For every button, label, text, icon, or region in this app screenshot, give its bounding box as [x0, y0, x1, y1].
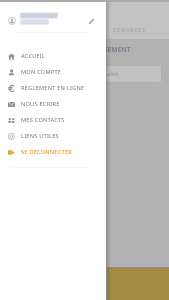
staticText: SE DÉCONNECTER — [21, 148, 72, 156]
staticText: NOUS ÉCRIRE — [21, 100, 60, 108]
staticText: Localité — [98, 70, 119, 78]
button[interactable]: MES CONTACTS — [0, 112, 106, 128]
button[interactable]: Add — [107, 267, 169, 300]
button[interactable]: Edit profile — [0, 0, 106, 34]
button[interactable]: Edit profile — [89, 19, 94, 24]
staticText: LIENS UTILES — [21, 132, 59, 140]
button[interactable]: Localité — [92, 65, 162, 83]
staticText: RÈGLEMENT EN LIGNE — [21, 84, 85, 92]
staticText: ACCUEIL — [21, 52, 46, 60]
staticText: MON COMPTE — [21, 68, 62, 76]
button[interactable]: RÈGLEMENT EN LIGNE — [0, 80, 106, 96]
button[interactable]: SE DÉCONNECTER — [0, 144, 106, 160]
button[interactable]: NOUS ÉCRIRE — [0, 96, 106, 112]
button[interactable]: ACCUEIL — [0, 48, 106, 64]
button[interactable]: LIENS UTILES — [0, 128, 106, 144]
staticText: NOUVEL HEBERGEMENT — [52, 45, 131, 54]
button[interactable]: DEMANDES — [113, 27, 146, 34]
button[interactable]: MON COMPTE — [0, 64, 106, 80]
staticText: MES CONTACTS — [21, 116, 65, 124]
